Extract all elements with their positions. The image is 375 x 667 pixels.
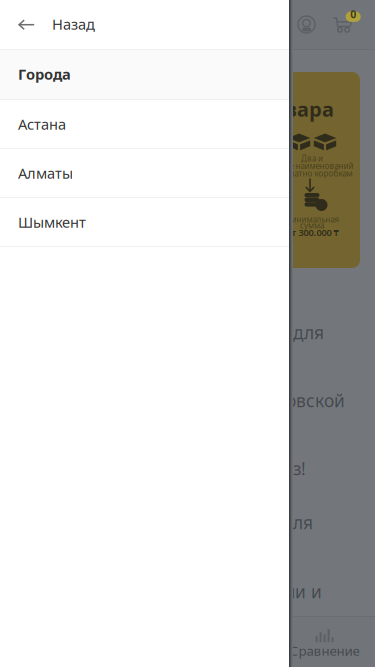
staticText: Бесплатная доставка товара xyxy=(41,96,334,122)
staticText: Назад xyxy=(52,14,95,34)
button[interactable]: Города xyxy=(0,50,289,99)
staticText: Астана xyxy=(18,114,66,134)
staticText: Оплата наличными или банковской картой н… xyxy=(38,389,345,435)
button[interactable]: Account xyxy=(289,7,323,41)
staticText: Два и xyxy=(301,153,323,164)
staticText: 0 xyxy=(350,7,356,21)
staticText: Сравнение xyxy=(289,642,359,659)
staticText: Работаем напрямую с заводами и отделами xyxy=(30,580,322,626)
staticText: от 300.000 ₸ xyxy=(285,226,338,239)
staticText: более наименований xyxy=(270,161,353,171)
staticText: Минимальная xyxy=(284,214,339,225)
staticText: Города xyxy=(18,64,71,84)
button[interactable]: Астана xyxy=(0,100,289,149)
staticText: Огромный выбор товаров для строительных xyxy=(65,321,324,367)
button[interactable]: Сравнение xyxy=(279,617,369,667)
staticText: Алматы xyxy=(18,163,73,183)
staticText: Шымкент xyxy=(18,212,86,232)
button[interactable]: Алматы xyxy=(0,149,289,198)
staticText: Персональный менеджер подберет для Вас xyxy=(0,511,313,557)
button[interactable]: Cart xyxy=(325,6,359,32)
button[interactable]: Шымкент xyxy=(0,198,289,247)
staticText: сумма xyxy=(300,220,324,231)
staticText: бесплатно коробкам xyxy=(271,168,352,179)
staticText: Доставим товар точно в срок, без отказ! xyxy=(0,457,306,480)
button[interactable]: Назад xyxy=(0,0,289,49)
